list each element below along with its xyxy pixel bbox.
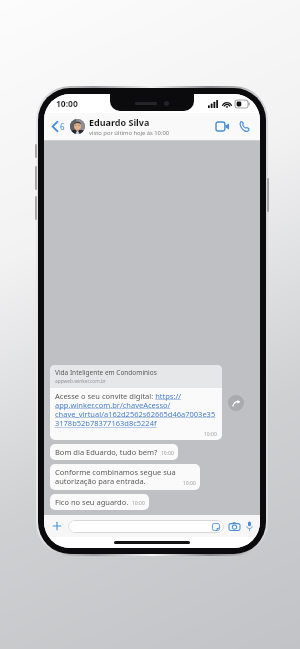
button[interactable]: Sticker (212, 523, 220, 531)
staticText: Bom dia Eduardo, tudo bem? (55, 447, 158, 457)
staticText: Vida Inteligente em Condomínios (55, 368, 157, 377)
staticText: appweb.winker.com.br (55, 378, 106, 385)
staticText: 10:00 (183, 480, 196, 487)
button[interactable]: Back (50, 118, 67, 135)
staticText: 10:00 (161, 450, 174, 457)
staticText: 6 (60, 121, 65, 132)
button[interactable]: Fico no seu aguardo. (50, 494, 149, 510)
button[interactable]: Sticker (68, 520, 224, 533)
button[interactable]: Conforme combinamos segue sua autorizaçã… (50, 464, 200, 490)
button[interactable]: Attach (50, 519, 64, 533)
staticText: visto por último hoje às 10:00 (89, 129, 170, 137)
button[interactable]: Bom dia Eduardo, tudo bem? (50, 444, 178, 460)
button[interactable]: Forward (228, 395, 244, 411)
staticText: Fico no seu aguardo. (55, 497, 129, 507)
staticText: 10:00 (204, 431, 217, 438)
staticText: Conforme combinamos segue sua autorizaçã… (55, 467, 180, 487)
staticText: 10:00 (132, 500, 145, 507)
button[interactable]: Video call (212, 118, 233, 135)
staticText: Eduardo Silva (89, 116, 150, 128)
button[interactable]: Eduardo Silva (70, 114, 212, 139)
button[interactable]: Vida Inteligente em Condomínios (50, 365, 222, 440)
button[interactable]: Camera (228, 521, 241, 532)
staticText: 10:00 (56, 98, 78, 110)
button[interactable]: Voice message (245, 520, 254, 532)
button[interactable]: Call (235, 117, 254, 136)
staticText: Acesse o seu convite digital: https://ap… (55, 391, 217, 429)
